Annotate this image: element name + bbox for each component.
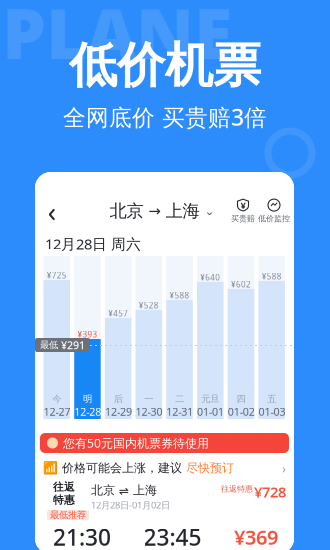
staticText: 四 — [236, 393, 245, 405]
staticText: 五 — [267, 393, 276, 405]
staticText: 您有50元国内机票券待使用 — [63, 435, 209, 451]
staticText: ¥728 — [254, 482, 286, 501]
staticText: 特惠 — [53, 493, 75, 507]
button[interactable]: 您有50元国内机票券待使用 — [40, 433, 289, 453]
staticText: 12-30 — [136, 405, 162, 419]
staticText: PLANE — [2, 0, 232, 78]
staticText: ¥291 — [61, 338, 85, 352]
staticText: 01-03 — [258, 405, 285, 419]
staticText: ⌄ — [204, 204, 214, 218]
button[interactable]: 往返 — [35, 476, 294, 550]
staticText: 上海 — [165, 200, 199, 222]
staticText: 12月28日 周六 — [45, 234, 141, 253]
staticText: 21:30 — [53, 522, 111, 550]
staticText: 低价监控 — [258, 214, 290, 223]
button[interactable]: 低价监控 — [258, 198, 290, 224]
staticText: 元旦 — [201, 393, 219, 405]
staticText: ¥602 — [231, 279, 251, 290]
staticText: ¥640 — [200, 272, 220, 283]
staticText: 价格可能会上涨，建议 — [62, 461, 182, 475]
staticText: › — [282, 459, 286, 477]
staticText: 12月28日-01月02日 — [91, 499, 170, 511]
staticText: 全网底价 买贵赔3倍 — [63, 102, 267, 132]
staticText: ¥528 — [139, 300, 159, 311]
staticText: ¥588 — [262, 271, 282, 282]
staticText: 12-29 — [105, 405, 131, 419]
staticText: 最低 — [40, 339, 58, 351]
staticText: ¥ — [240, 199, 245, 211]
staticText: 北京 — [109, 200, 143, 222]
staticText: 一 — [144, 393, 153, 405]
staticText: 北京 ⇌ 上海 — [91, 483, 157, 498]
staticText: 买贵赔 — [231, 214, 255, 223]
staticText: 尽快预订 — [186, 461, 234, 475]
staticText: 📶 — [43, 461, 58, 475]
staticText: 往返特惠 — [221, 484, 253, 494]
staticText: 明 — [83, 393, 92, 405]
staticText: ¥588 — [170, 290, 190, 301]
staticText: 往返 — [53, 480, 75, 493]
button[interactable]: 📶 — [35, 457, 294, 479]
staticText: 12-27 — [43, 405, 70, 419]
staticText: 12-31 — [166, 405, 193, 419]
staticText: 后 — [114, 393, 123, 405]
staticText: 01-01 — [197, 405, 223, 419]
staticText: ¥369 — [234, 524, 278, 550]
staticText: 低价机票 — [69, 36, 261, 95]
staticText: 12-28 — [74, 405, 101, 419]
staticText: 二 — [175, 393, 184, 405]
staticText: → — [148, 203, 160, 219]
staticText: ‹ — [47, 192, 56, 230]
button[interactable]: 北京 — [107, 196, 217, 226]
button[interactable]: 买贵赔 — [227, 198, 259, 224]
staticText: ¥725 — [47, 270, 67, 281]
staticText: 今 — [52, 393, 61, 405]
staticText: ¥457 — [108, 308, 128, 319]
staticText: 23:45 — [143, 522, 201, 550]
staticText: 01-02 — [228, 405, 254, 419]
staticText: 最低推荐 — [50, 509, 86, 521]
staticText: ¥393 — [77, 329, 97, 340]
button[interactable]: 返回 — [39, 196, 65, 226]
